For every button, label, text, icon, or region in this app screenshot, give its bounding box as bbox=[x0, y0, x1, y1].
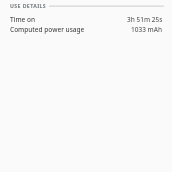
staticText: Computed power usage bbox=[10, 25, 85, 34]
staticText: 1033 mAh bbox=[131, 25, 163, 34]
staticText: USE DETAILS bbox=[10, 2, 47, 9]
staticText: Time on bbox=[10, 15, 36, 24]
button[interactable]: Time on bbox=[0, 15, 172, 24]
staticText: 3h 51m 25s bbox=[127, 15, 163, 24]
button[interactable]: Computed power usage bbox=[0, 25, 172, 34]
